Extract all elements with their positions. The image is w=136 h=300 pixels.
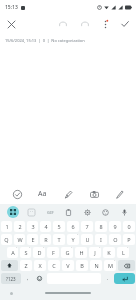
button[interactable]: P <box>123 234 135 245</box>
staticText: 6 <box>71 223 75 230</box>
button[interactable]: I <box>95 234 107 245</box>
button[interactable]: O <box>109 234 121 245</box>
button[interactable]: Clipboard <box>62 206 74 218</box>
button[interactable]: Toolbar <box>7 206 19 218</box>
button[interactable]: C <box>48 260 60 271</box>
button[interactable]: Save <box>117 16 133 32</box>
staticText: K <box>107 249 111 256</box>
staticText: 3 <box>31 223 35 230</box>
button[interactable]: Camera <box>85 185 103 203</box>
button[interactable]: J <box>89 247 101 258</box>
button[interactable]: GIF <box>44 206 56 218</box>
staticText: V <box>66 262 70 269</box>
button[interactable]: Period <box>103 273 112 284</box>
staticText: ' <box>43 247 44 251</box>
button[interactable]: D <box>33 247 45 258</box>
button[interactable]: 9 <box>109 221 121 232</box>
button[interactable]: More options <box>97 16 113 32</box>
staticText: 2 <box>18 223 22 230</box>
button[interactable]: N <box>90 260 102 271</box>
button[interactable]: Y <box>67 234 79 245</box>
button[interactable]: Backspace <box>118 260 135 271</box>
button[interactable]: 6 <box>67 221 79 232</box>
button[interactable]: L <box>117 247 129 258</box>
button[interactable]: W <box>14 234 25 245</box>
button[interactable]: A <box>7 247 18 258</box>
staticText: I <box>100 236 102 243</box>
staticText: P <box>127 236 131 243</box>
button[interactable]: X <box>34 260 46 271</box>
button[interactable]: Comma <box>23 273 32 284</box>
staticText: 7 <box>85 223 89 230</box>
button[interactable]: M <box>104 260 116 271</box>
button[interactable]: 2 <box>14 221 25 232</box>
button[interactable]: Voice input <box>118 206 130 218</box>
button[interactable]: B <box>76 260 88 271</box>
button[interactable]: V <box>62 260 74 271</box>
staticText: H <box>79 249 84 256</box>
staticText: O <box>113 236 118 243</box>
button[interactable]: Checklist <box>8 185 26 203</box>
staticText: Z <box>24 262 28 269</box>
button[interactable]: T <box>53 234 65 245</box>
button[interactable]: 7 <box>81 221 93 232</box>
staticText: D <box>37 249 42 256</box>
button[interactable]: 5 <box>53 221 65 232</box>
staticText: L <box>122 249 125 256</box>
button[interactable]: Stickers <box>25 206 37 218</box>
staticText: F <box>52 249 55 256</box>
staticText: R <box>44 236 48 243</box>
button[interactable]: S <box>20 247 31 258</box>
button[interactable]: R <box>40 234 51 245</box>
button[interactable]: Settings <box>81 206 93 218</box>
button[interactable]: F <box>47 247 59 258</box>
staticText: X <box>38 262 42 269</box>
button[interactable]: Shift <box>1 260 18 271</box>
button[interactable]: 8 <box>95 221 107 232</box>
staticText: ' <box>99 247 100 251</box>
button[interactable]: Enter <box>114 273 135 284</box>
staticText: ?123 <box>6 276 16 282</box>
staticText: 15/6/2024, 15:13 | 0 | No categorization <box>5 38 85 43</box>
staticText: , <box>27 275 29 282</box>
staticText: J <box>94 249 96 256</box>
button[interactable]: U <box>81 234 93 245</box>
button[interactable]: 1 <box>1 221 12 232</box>
button[interactable]: E <box>27 234 38 245</box>
staticText: N <box>94 262 99 269</box>
staticText: C <box>52 262 56 269</box>
button[interactable]: H <box>75 247 87 258</box>
button[interactable]: Close <box>3 16 19 32</box>
staticText: ' <box>16 247 17 251</box>
button[interactable]: Undo <box>55 16 71 32</box>
staticText: W <box>17 236 23 243</box>
staticText: 0 <box>127 223 131 230</box>
button[interactable]: 3 <box>27 221 38 232</box>
staticText: ' <box>77 234 78 238</box>
button[interactable]: K <box>103 247 115 258</box>
button[interactable]: 4 <box>40 221 51 232</box>
button[interactable]: Emoji <box>34 273 45 284</box>
button[interactable]: Themes <box>99 206 111 218</box>
staticText: M <box>108 262 113 269</box>
button[interactable]: Handwriting <box>110 185 128 203</box>
button[interactable]: 15/6/2024, 15:13 | 0 | No categorization <box>0 34 136 46</box>
staticText: S <box>24 249 28 256</box>
staticText: A <box>11 249 15 256</box>
staticText: ' <box>29 247 30 251</box>
staticText: 15:13 <box>5 4 18 11</box>
staticText: Aa <box>38 189 47 199</box>
button[interactable]: Z <box>20 260 32 271</box>
button[interactable]: Text format <box>33 185 51 203</box>
button[interactable]: Draw <box>59 185 77 203</box>
button[interactable]: Q <box>1 234 12 245</box>
button[interactable]: G <box>61 247 73 258</box>
button[interactable]: Symbols <box>1 273 21 284</box>
button[interactable]: 0 <box>123 221 135 232</box>
button[interactable]: Redo <box>77 16 93 32</box>
button[interactable]: Home <box>45 292 91 294</box>
staticText: 1 <box>5 223 9 230</box>
staticText: ' <box>71 247 72 251</box>
